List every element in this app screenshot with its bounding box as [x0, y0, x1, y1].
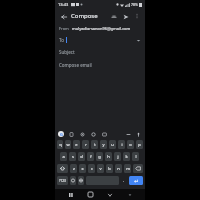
staticText: m [126, 166, 130, 171]
button[interactable]: Stickers [90, 131, 97, 138]
staticText: Compose email [59, 62, 92, 68]
button[interactable]: v [97, 164, 104, 173]
button[interactable]: More options [132, 11, 142, 21]
button[interactable]: o [127, 140, 134, 149]
staticText: z [73, 166, 75, 171]
button[interactable]: q [57, 140, 63, 149]
button[interactable]: e [73, 140, 80, 149]
staticText: ?123 [59, 179, 66, 183]
staticText: a [62, 154, 65, 159]
button[interactable]: Language [78, 176, 84, 185]
button[interactable]: g [96, 152, 103, 161]
staticText: d [80, 154, 83, 159]
staticText: y [102, 142, 105, 147]
staticText: To [59, 37, 64, 43]
button[interactable]: Home [86, 190, 95, 199]
staticText: u [111, 142, 114, 147]
button[interactable]: Back [58, 11, 69, 22]
button[interactable]: Compose email [55, 58, 145, 129]
staticText: k [125, 154, 128, 159]
staticText: Subject [59, 49, 75, 55]
button[interactable]: Voice input [135, 131, 142, 138]
staticText: s [72, 154, 74, 159]
button[interactable]: p [136, 140, 143, 149]
staticText: x [81, 166, 84, 171]
staticText: b [108, 166, 111, 171]
button[interactable]: t [91, 140, 98, 149]
button[interactable]: From [55, 23, 145, 34]
staticText: From [59, 26, 69, 31]
button[interactable]: y [100, 140, 107, 149]
staticText: g [98, 154, 101, 159]
staticText: e [75, 142, 78, 147]
staticText: v [99, 166, 102, 171]
staticText: w [66, 142, 70, 147]
staticText: o [129, 142, 132, 147]
button[interactable]: u [109, 140, 116, 149]
button[interactable]: Clipboard [68, 131, 75, 138]
staticText: 13:43 [58, 2, 69, 7]
button[interactable]: Emoji [70, 176, 76, 185]
button[interactable]: n [115, 164, 122, 173]
staticText: G [60, 132, 63, 137]
staticText: f [90, 154, 92, 159]
staticText: Compose [71, 12, 98, 20]
button[interactable]: s [69, 152, 76, 161]
button[interactable]: Shift [57, 164, 68, 173]
button[interactable]: Enter [129, 176, 143, 185]
staticText: p [138, 142, 141, 147]
button[interactable]: Send [120, 11, 131, 22]
staticText: t [94, 142, 96, 147]
staticText: j [117, 154, 119, 159]
button[interactable]: Attach file [108, 11, 119, 22]
button[interactable]: i [118, 140, 125, 149]
staticText: c [91, 166, 93, 171]
staticText: l [135, 154, 137, 159]
button[interactable]: Google [58, 131, 64, 137]
button[interactable]: j [114, 152, 121, 161]
staticText: n [117, 166, 120, 171]
button[interactable]: k [123, 152, 130, 161]
button[interactable]: x [79, 164, 86, 173]
button[interactable]: m [124, 164, 131, 173]
staticText: mulyadiarsanon96@gmail.com [72, 26, 131, 31]
button[interactable]: b [106, 164, 113, 173]
button[interactable]: Hide keyboard [125, 190, 134, 199]
button[interactable]: Back [105, 190, 114, 199]
button[interactable]: Settings [79, 131, 86, 138]
staticText: h [107, 154, 110, 159]
button[interactable]: ?123 [57, 176, 68, 185]
button[interactable]: r [82, 140, 89, 149]
staticText: . [123, 178, 125, 183]
staticText: q [59, 142, 62, 147]
staticText: i [121, 142, 123, 147]
button[interactable]: c [88, 164, 95, 173]
staticText: 78% [131, 2, 138, 7]
button[interactable]: More [125, 131, 132, 138]
button[interactable]: Subject [55, 46, 145, 58]
staticText: r [85, 142, 87, 147]
button[interactable]: l [132, 152, 139, 161]
button[interactable]: Recents [66, 190, 75, 199]
button[interactable]: z [70, 164, 77, 173]
button[interactable]: h [105, 152, 112, 161]
button[interactable]: Backspace [133, 164, 143, 173]
button[interactable]: . [121, 176, 127, 185]
button[interactable]: w [65, 140, 71, 149]
button[interactable]: f [87, 152, 94, 161]
button[interactable]: To [55, 34, 145, 46]
button[interactable]: d [78, 152, 85, 161]
button[interactable]: a [60, 152, 67, 161]
button[interactable]: GIF [101, 131, 108, 138]
